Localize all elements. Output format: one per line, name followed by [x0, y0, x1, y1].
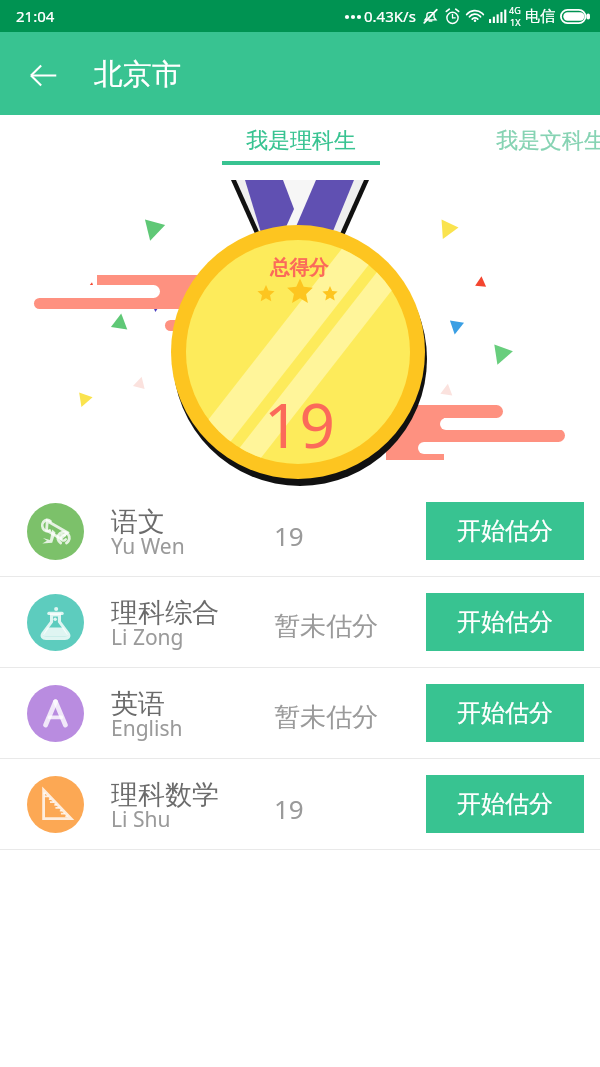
button[interactable]: Back [15, 46, 71, 102]
staticText: 19 [264, 382, 335, 466]
button[interactable]: 开始估分 [426, 775, 584, 833]
button[interactable]: 语文 [0, 486, 600, 576]
staticText: 总得分 [270, 255, 329, 280]
button[interactable]: 我是理科生 [222, 115, 380, 180]
staticText: 0.43K/s [364, 6, 416, 26]
staticText: Li Zong [111, 623, 184, 652]
button[interactable]: 开始估分 [426, 684, 584, 742]
staticText: Li Shu [111, 805, 171, 834]
button[interactable]: 理科综合 [0, 577, 600, 667]
staticText: 理科综合 [111, 596, 219, 630]
staticText: 暂未估分 [274, 701, 378, 734]
button[interactable]: 我是文科生 [472, 115, 600, 180]
staticText: 电信 [525, 7, 555, 26]
staticText: English [111, 714, 183, 743]
staticText: Yu Wen [111, 532, 185, 561]
staticText: 暂未估分 [274, 610, 378, 643]
staticText: 开始估分 [457, 698, 553, 728]
staticText: 开始估分 [457, 607, 553, 637]
button[interactable]: 理科数学 [0, 759, 600, 849]
staticText: 英语 [111, 687, 165, 721]
staticText: 19 [274, 791, 304, 826]
staticText: 北京市 [94, 56, 181, 93]
button[interactable]: 开始估分 [426, 593, 584, 651]
staticText: 语文 [111, 505, 165, 539]
button[interactable]: 开始估分 [426, 502, 584, 560]
staticText: 开始估分 [457, 789, 553, 819]
staticText: 我是理科生 [246, 127, 356, 155]
staticText: 1X [510, 16, 521, 28]
staticText: 21:04 [16, 6, 55, 26]
staticText: 4G [509, 4, 521, 16]
button[interactable]: 英语 [0, 668, 600, 758]
staticText: 开始估分 [457, 516, 553, 546]
staticText: 19 [274, 518, 304, 553]
staticText: 我是文科生 [496, 127, 600, 155]
staticText: 理科数学 [111, 778, 219, 812]
